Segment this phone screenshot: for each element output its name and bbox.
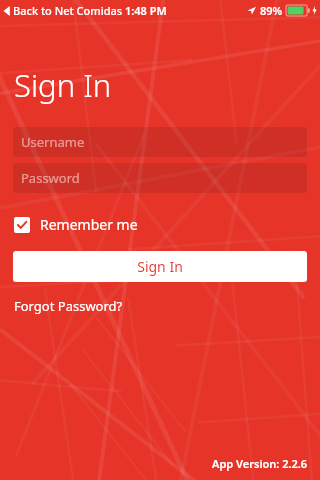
button[interactable]: Password <box>13 163 307 193</box>
staticText: Sign In <box>14 64 112 106</box>
staticText: Back to Net Comidas <box>13 3 123 18</box>
button[interactable]: Sign In <box>13 251 307 282</box>
button[interactable]: Remember me <box>14 215 138 234</box>
button[interactable]: Back to Net Comidas <box>3 3 123 18</box>
staticText: Password <box>21 169 80 187</box>
staticText: Username <box>21 133 85 151</box>
button[interactable]: Forgot Password? <box>14 297 123 315</box>
staticText: 1:48 PM <box>125 3 167 18</box>
staticText: App Version: 2.2.6 <box>212 456 308 471</box>
staticText: Remember me <box>40 215 138 234</box>
staticText: 89% <box>260 3 283 18</box>
staticText: Sign In <box>137 257 183 276</box>
staticText: Forgot Password? <box>14 297 123 315</box>
button[interactable]: Username <box>13 127 307 157</box>
